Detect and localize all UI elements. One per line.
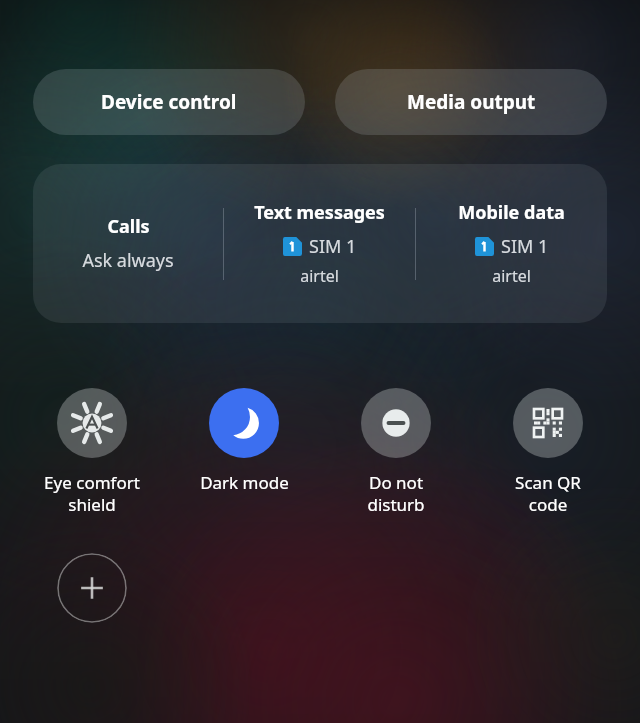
staticText: Dark mode [200, 471, 289, 494]
button[interactable]: Add tiles [57, 553, 127, 623]
staticText: airtel [492, 265, 531, 287]
button[interactable]: Dark mode [168, 388, 320, 494]
button[interactable]: Calls [33, 164, 223, 323]
staticText: Do not disturb [367, 471, 425, 516]
staticText: SIM 1 [501, 234, 549, 259]
staticText: airtel [300, 265, 339, 287]
button[interactable]: Media output [335, 69, 607, 135]
button[interactable]: Device control [33, 69, 305, 135]
staticText: Mobile data [458, 200, 565, 225]
staticText: Media output [407, 89, 536, 115]
staticText: Eye comfort shield [44, 471, 140, 516]
button[interactable]: Text messages [224, 164, 415, 323]
staticText: Calls [107, 214, 150, 239]
button[interactable]: Eye comfort shield [16, 388, 168, 516]
staticText: Text messages [254, 200, 385, 225]
button[interactable]: Do not disturb [320, 388, 472, 516]
staticText: Ask always [82, 248, 174, 273]
staticText: Scan QR code [515, 471, 581, 516]
staticText: Device control [101, 89, 237, 115]
button[interactable]: Mobile data [416, 164, 607, 323]
staticText: SIM 1 [309, 234, 357, 259]
button[interactable]: Scan QR code [472, 388, 624, 516]
